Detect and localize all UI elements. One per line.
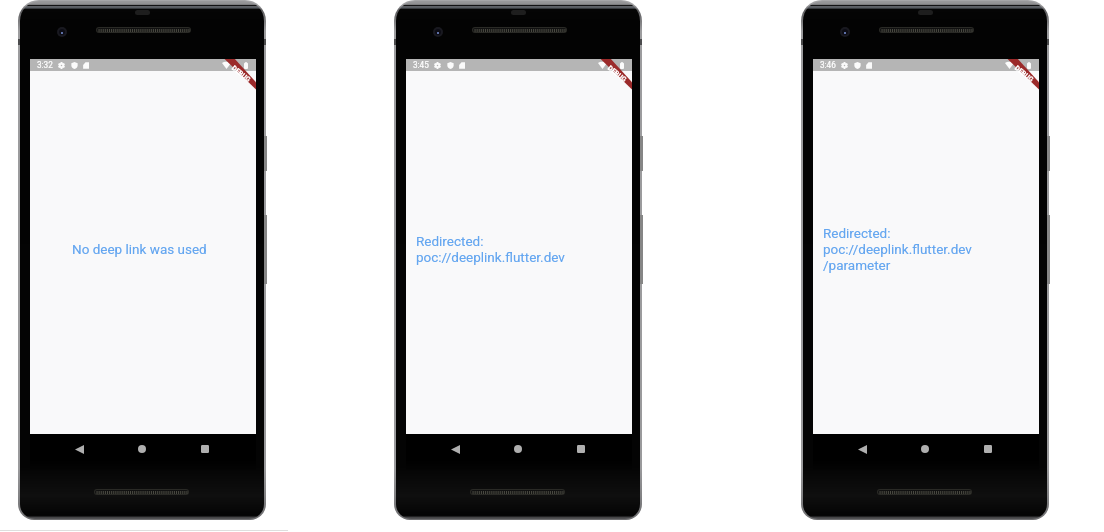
button[interactable]: Recent apps	[572, 440, 590, 458]
button[interactable]: Back	[853, 440, 871, 458]
staticText: 3:32	[37, 60, 53, 70]
staticText: No deep link was used	[72, 241, 207, 257]
button[interactable]: Home	[916, 440, 934, 458]
button[interactable]: Recent apps	[196, 440, 214, 458]
staticText: /parameter	[823, 257, 891, 273]
staticText: DEBUG	[230, 64, 252, 84]
staticText: DEBUG	[606, 64, 628, 84]
staticText: 3:46	[820, 60, 836, 70]
button[interactable]: Back	[70, 440, 88, 458]
staticText: Redirected:	[823, 225, 891, 241]
button[interactable]: Home	[133, 440, 151, 458]
staticText: DEBUG	[1013, 64, 1035, 84]
staticText: poc://deeplink.flutter.dev	[416, 249, 565, 265]
staticText: 3:45	[413, 60, 429, 70]
staticText: poc://deeplink.flutter.dev	[823, 241, 972, 257]
staticText: Redirected:	[416, 233, 484, 249]
button[interactable]: Recent apps	[979, 440, 997, 458]
button[interactable]: Home	[509, 440, 527, 458]
button[interactable]: Back	[446, 440, 464, 458]
